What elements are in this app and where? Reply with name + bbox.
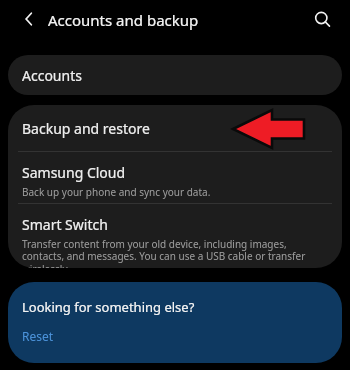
button[interactable]: Smart Switch (8, 204, 342, 268)
staticText: Accounts (22, 66, 82, 85)
staticText: Looking for something else? (22, 298, 195, 316)
staticText: Transfer content from your old device, i… (22, 237, 326, 268)
button[interactable]: Samsung Cloud (8, 152, 342, 203)
button[interactable]: Back (14, 4, 44, 34)
button[interactable]: Reset (22, 328, 54, 344)
staticText: Reset (22, 328, 54, 344)
staticText: Back up your phone and sync your data. (22, 185, 211, 199)
button[interactable]: Accounts (8, 55, 342, 95)
staticText: Smart Switch (22, 215, 108, 234)
staticText: Samsung Cloud (22, 163, 126, 182)
staticText: Accounts and backup (48, 10, 199, 30)
staticText: Backup and restore (22, 119, 150, 138)
button[interactable]: Backup and restore (8, 105, 342, 151)
button[interactable]: Search (306, 3, 338, 35)
